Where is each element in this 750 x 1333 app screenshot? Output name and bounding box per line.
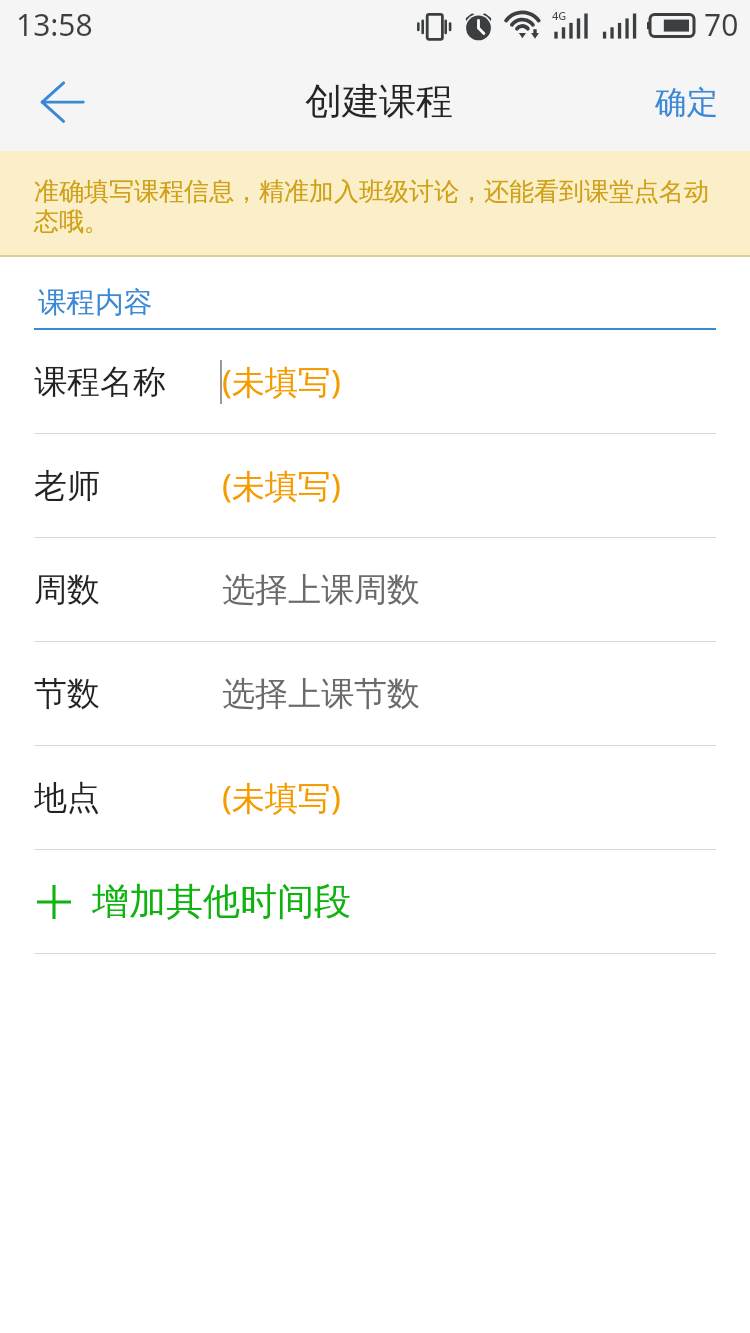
staticText: 4G — [552, 8, 567, 23]
button[interactable]: Back — [0, 51, 124, 151]
staticText: 选择上课节数 — [222, 673, 420, 715]
button[interactable]: 地点 — [0, 746, 750, 849]
staticText: 周数 — [34, 569, 220, 611]
staticText: 准确填写课程信息，精准加入班级讨论，还能看到课堂点名动态哦。 — [34, 176, 720, 238]
button[interactable]: 周数 — [0, 538, 750, 641]
staticText: 70 — [704, 4, 739, 45]
staticText: (未填写) — [222, 463, 341, 508]
staticText: 选择上课周数 — [222, 569, 420, 611]
staticText: 老师 — [34, 465, 220, 507]
staticText: 课程内容 — [38, 285, 152, 321]
staticText: 创建课程 — [305, 78, 453, 125]
button[interactable]: 增加其他时间段 — [0, 850, 750, 953]
staticText: 课程名称 — [34, 361, 220, 403]
staticText: (未填写) — [222, 359, 341, 404]
staticText: 确定 — [655, 83, 718, 123]
button[interactable]: 老师 — [0, 434, 750, 537]
staticText: 13:58 — [16, 4, 93, 45]
button[interactable]: 确定 — [622, 51, 750, 151]
staticText: 节数 — [34, 673, 220, 715]
staticText: (未填写) — [222, 775, 341, 820]
staticText: 增加其他时间段 — [92, 878, 351, 925]
button[interactable]: 节数 — [0, 642, 750, 745]
button[interactable]: 课程名称 — [0, 330, 750, 433]
staticText: 地点 — [34, 777, 220, 819]
